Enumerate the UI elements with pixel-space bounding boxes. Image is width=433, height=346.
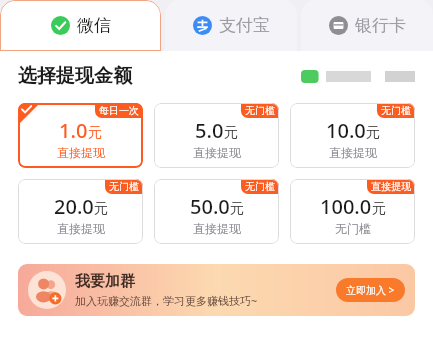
- staticText: 银行卡: [355, 15, 406, 36]
- staticText: 20.0: [54, 193, 94, 220]
- staticText: 元: [94, 200, 108, 218]
- staticText: 元: [366, 124, 380, 142]
- staticText: 直接提现: [193, 145, 241, 160]
- staticText: 加入玩赚交流群，学习更多赚钱技巧~: [75, 293, 258, 308]
- staticText: 选择提现金额: [18, 64, 132, 88]
- staticText: 100.0: [320, 193, 372, 220]
- staticText: 微信: [77, 15, 111, 36]
- staticText: 50.0: [190, 193, 230, 220]
- button[interactable]: 100.0: [290, 179, 415, 244]
- staticText: 我要加群: [75, 272, 135, 291]
- button[interactable]: 5.0: [154, 103, 279, 168]
- staticText: 直接提现: [329, 145, 377, 160]
- staticText: 每日一次: [99, 104, 139, 117]
- other: Group avatar: [28, 271, 66, 309]
- staticText: 元: [224, 124, 238, 142]
- staticText: 10.0: [326, 117, 366, 144]
- staticText: 元: [88, 124, 102, 142]
- staticText: 立即加入 >: [346, 283, 395, 297]
- other: Bank card: [329, 16, 348, 35]
- staticText: 无门槛: [245, 104, 275, 117]
- staticText: 无门槛: [109, 180, 139, 193]
- staticText: 直接提现: [193, 221, 241, 236]
- button[interactable]: 10.0: [290, 103, 415, 168]
- button[interactable]: Group avatar: [18, 264, 415, 316]
- staticText: 5.0: [195, 117, 224, 144]
- button[interactable]: 20.0: [18, 179, 143, 244]
- staticText: 直接提现: [371, 180, 411, 193]
- staticText: 直接提现: [57, 145, 105, 160]
- staticText: 1.0: [59, 117, 88, 144]
- button[interactable]: WeChat: [0, 0, 161, 51]
- staticText: 元: [372, 200, 386, 218]
- staticText: 直接提现: [57, 221, 105, 236]
- staticText: 无门槛: [335, 221, 371, 236]
- staticText: 无门槛: [245, 180, 275, 193]
- button[interactable]: 立即加入 >: [336, 278, 405, 302]
- button[interactable]: 1.0: [18, 103, 143, 168]
- staticText: 无门槛: [381, 104, 411, 117]
- other: Alipay: [193, 16, 212, 35]
- button[interactable]: Alipay: [165, 0, 297, 51]
- other: WeChat: [51, 16, 70, 35]
- button[interactable]: 50.0: [154, 179, 279, 244]
- staticText: 支付宝: [219, 15, 270, 36]
- staticText: 元: [230, 200, 244, 218]
- button[interactable]: Bank card: [301, 0, 433, 51]
